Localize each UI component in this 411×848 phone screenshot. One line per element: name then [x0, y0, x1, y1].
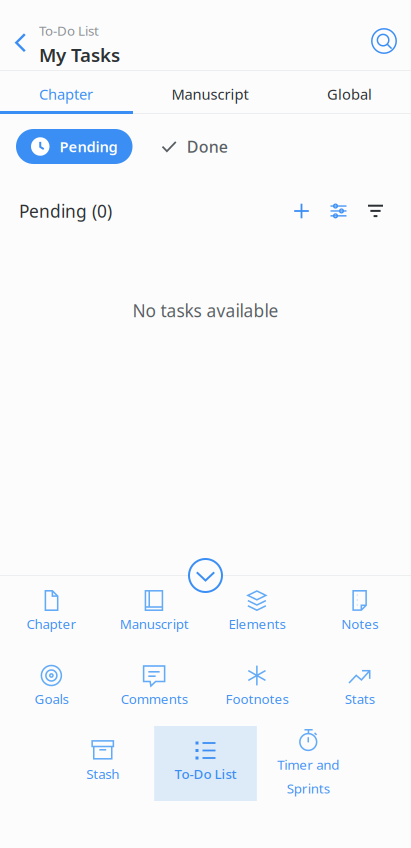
staticText: Notes	[341, 615, 378, 633]
button[interactable]: Chapter	[39, 85, 93, 103]
button[interactable]: Comments	[103, 651, 206, 726]
staticText: Chapter	[39, 84, 93, 104]
staticText: Pending (0)	[19, 199, 112, 222]
staticText: Stats	[345, 690, 375, 708]
staticText: My Tasks	[39, 42, 120, 67]
staticText: Manuscript	[120, 615, 189, 633]
button[interactable]: Manuscript	[171, 85, 248, 103]
staticText: Done	[187, 136, 228, 157]
staticText: Comments	[121, 690, 188, 708]
button[interactable]: Done	[146, 129, 243, 164]
button[interactable]: To-Do List	[154, 726, 257, 801]
staticText: Pending	[59, 137, 117, 156]
staticText: Goals	[34, 690, 68, 708]
staticText: Manuscript	[171, 84, 248, 104]
button[interactable]: Back	[2, 0, 39, 71]
button[interactable]: Chapter	[0, 576, 103, 651]
button[interactable]: Pending	[16, 129, 132, 164]
button[interactable]: Search	[364, 0, 404, 71]
button[interactable]: Manuscript	[103, 576, 206, 651]
staticText: Sprints	[287, 779, 330, 797]
staticText: Timer and	[277, 756, 339, 773]
button[interactable]: Sort options	[320, 198, 357, 224]
button[interactable]: Goals	[0, 651, 103, 726]
button[interactable]: Stash	[51, 726, 154, 801]
button[interactable]: Global	[327, 85, 372, 103]
staticText: Footnotes	[225, 690, 288, 708]
button[interactable]: Timer and	[257, 726, 360, 801]
button[interactable]: Notes	[308, 576, 411, 651]
staticText: No tasks available	[132, 299, 278, 322]
staticText: Global	[327, 84, 372, 104]
staticText: To-Do List	[174, 765, 236, 783]
staticText: Elements	[228, 615, 285, 633]
staticText: Chapter	[26, 615, 76, 633]
staticText: To-Do List	[39, 22, 99, 39]
staticText: Stash	[86, 765, 119, 783]
button[interactable]: Footnotes	[205, 651, 308, 726]
button[interactable]: Stats	[308, 651, 411, 726]
button[interactable]: Filter	[357, 198, 394, 224]
button[interactable]: Elements	[205, 576, 308, 651]
button[interactable]: Add task	[283, 198, 320, 224]
